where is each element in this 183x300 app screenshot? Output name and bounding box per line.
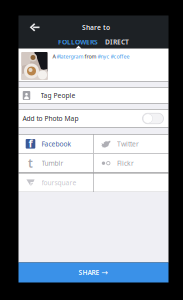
button[interactable]: DIRECT xyxy=(105,37,129,46)
staticText: Twitter xyxy=(117,139,139,148)
button[interactable]: foursquare xyxy=(18,173,93,192)
staticText: Facebook xyxy=(41,139,71,148)
staticText: DIRECT xyxy=(105,38,129,46)
button[interactable]: Add to Photo Map xyxy=(18,109,168,127)
staticText: FOLLOWERS xyxy=(58,38,98,46)
staticText: foursquare xyxy=(41,178,76,187)
staticText: #latergram xyxy=(56,53,83,60)
button[interactable]: f xyxy=(18,134,93,153)
button[interactable]: Back xyxy=(23,20,45,34)
staticText: SHARE xyxy=(78,268,99,277)
staticText: #coffee xyxy=(110,53,129,60)
button[interactable]: Tag People xyxy=(18,87,168,103)
staticText: Tag People xyxy=(40,91,75,100)
button[interactable]: FOLLOWERS xyxy=(58,37,98,46)
button[interactable]: Twitter xyxy=(94,134,168,153)
button[interactable]: t xyxy=(18,154,93,172)
staticText: #nyc xyxy=(97,53,109,60)
staticText: Flickr xyxy=(117,159,134,168)
staticText: Add to Photo Map xyxy=(22,114,78,123)
button[interactable]: Flickr xyxy=(94,154,168,172)
staticText: f xyxy=(28,136,32,150)
staticText: A xyxy=(52,53,56,60)
staticText: from xyxy=(83,53,97,60)
staticText: Tumblr xyxy=(41,159,63,168)
staticText: → xyxy=(101,268,108,277)
staticText: Share to xyxy=(82,23,110,32)
staticText: t xyxy=(28,155,33,171)
button[interactable]: SHARE xyxy=(18,262,168,282)
button[interactable]: A xyxy=(18,48,168,81)
